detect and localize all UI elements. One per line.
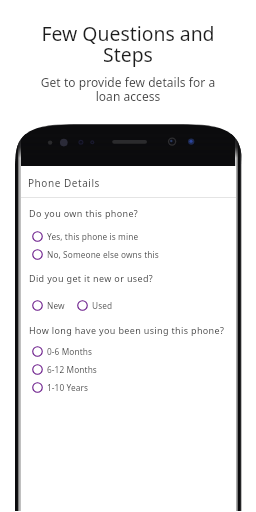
staticText: How long have you been using this phone? — [29, 324, 225, 336]
staticText: Do you own this phone? — [29, 207, 139, 219]
staticText: Phone Details — [28, 176, 100, 190]
staticText: Did you get it new or used? — [29, 272, 154, 284]
button[interactable]: Yes, this phone is mine — [21, 228, 236, 245]
button[interactable]: No, Someone else owns this — [21, 246, 236, 263]
staticText: Get to provide few details for a loan ac… — [38, 74, 218, 104]
staticText: Few Questions and Steps — [30, 20, 226, 67]
staticText: Yes, this phone is mine — [47, 231, 139, 242]
staticText: 1-10 Years — [47, 382, 89, 393]
staticText: No, Someone else owns this — [47, 249, 159, 260]
button[interactable]: 0-6 Months — [21, 343, 236, 360]
staticText: New — [47, 300, 65, 311]
button[interactable]: 6-12 Months — [21, 361, 236, 378]
button[interactable]: 1-10 Years — [21, 379, 236, 396]
button[interactable]: New — [32, 297, 65, 314]
staticText: 6-12 Months — [47, 364, 97, 375]
staticText: Used — [92, 300, 113, 311]
button[interactable]: Used — [77, 297, 113, 314]
staticText: 0-6 Months — [47, 346, 93, 357]
